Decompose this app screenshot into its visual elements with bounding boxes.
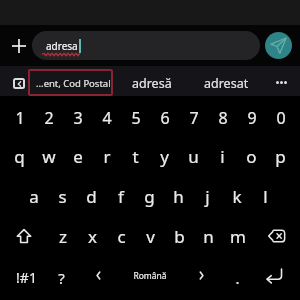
button[interactable]: p	[266, 138, 295, 178]
staticText: ?	[58, 268, 65, 288]
staticText: d	[86, 185, 97, 208]
button[interactable]: Send	[265, 32, 292, 59]
button[interactable]: 7	[179, 98, 208, 138]
button[interactable]: Enter	[255, 258, 300, 298]
staticText: u	[188, 145, 199, 168]
button[interactable]: More options	[261, 66, 300, 96]
staticText: 9	[247, 107, 257, 129]
button[interactable]: g	[135, 178, 164, 218]
staticText: m	[230, 225, 246, 248]
button[interactable]: a	[20, 178, 48, 218]
staticText: v	[146, 225, 155, 248]
staticText: adresat	[204, 75, 249, 92]
staticText: x	[88, 225, 97, 248]
staticText: f	[118, 185, 124, 208]
button[interactable]: Backspace	[252, 218, 300, 258]
staticText: p	[275, 145, 286, 168]
button[interactable]: Add attachment	[0, 25, 38, 66]
button[interactable]: d	[77, 178, 106, 218]
button[interactable]: adresă	[117, 66, 187, 96]
button[interactable]: 4	[92, 98, 121, 138]
staticText: Română	[133, 270, 167, 282]
button[interactable]: x	[78, 218, 107, 258]
button[interactable]: y	[150, 138, 179, 178]
button[interactable]: z	[48, 218, 78, 258]
staticText: 1	[15, 107, 25, 129]
button[interactable]: w	[34, 138, 63, 178]
staticText: q	[14, 145, 25, 168]
button[interactable]: !#1	[0, 258, 43, 298]
staticText: .	[235, 268, 240, 288]
staticText: 7	[189, 107, 199, 129]
staticText: 0	[276, 107, 286, 129]
button[interactable]: k	[222, 178, 251, 218]
staticText: w	[42, 145, 56, 168]
button[interactable]: 0	[266, 98, 295, 138]
staticText: k	[232, 185, 242, 208]
staticText: b	[174, 225, 185, 248]
button[interactable]: Română	[115, 258, 183, 298]
button[interactable]: adresat	[191, 66, 261, 96]
staticText: o	[246, 145, 257, 168]
button[interactable]: Shift	[0, 218, 48, 258]
staticText: a	[29, 185, 39, 208]
button[interactable]: ?	[43, 258, 79, 298]
staticText: h	[173, 185, 184, 208]
button[interactable]: Previous	[79, 258, 115, 298]
staticText: s	[58, 185, 67, 208]
button[interactable]: u	[179, 138, 208, 178]
button[interactable]: c	[107, 218, 136, 258]
staticText: i	[220, 145, 225, 168]
button[interactable]: ...ent, Cod Postal	[28, 69, 113, 96]
button[interactable]: f	[106, 178, 135, 218]
button[interactable]: t	[121, 138, 150, 178]
button[interactable]: Expand suggestions	[0, 66, 29, 96]
button[interactable]: 3	[63, 98, 92, 138]
button[interactable]: s	[48, 178, 77, 218]
staticText: 4	[102, 107, 112, 129]
staticText: 5	[131, 107, 141, 129]
button[interactable]: h	[164, 178, 193, 218]
button[interactable]: i	[208, 138, 237, 178]
staticText: adresă	[132, 75, 172, 92]
button[interactable]: 8	[208, 98, 237, 138]
staticText: !#1	[16, 268, 37, 287]
button[interactable]: n	[194, 218, 223, 258]
staticText: e	[73, 145, 83, 168]
staticText: adresa	[46, 39, 78, 53]
staticText: r	[103, 145, 111, 168]
button[interactable]: q	[5, 138, 34, 178]
button[interactable]: adresa	[32, 31, 260, 60]
button[interactable]: m	[223, 218, 252, 258]
staticText: y	[160, 145, 169, 168]
staticText: 6	[160, 107, 170, 129]
button[interactable]: 5	[121, 98, 150, 138]
button[interactable]: e	[63, 138, 92, 178]
staticText: c	[117, 225, 126, 248]
button[interactable]: b	[165, 218, 194, 258]
button[interactable]: o	[237, 138, 266, 178]
staticText: n	[203, 225, 214, 248]
button[interactable]: r	[92, 138, 121, 178]
button[interactable]: 2	[34, 98, 63, 138]
button[interactable]: 9	[237, 98, 266, 138]
staticText: g	[144, 185, 155, 208]
staticText: j	[205, 185, 210, 208]
button[interactable]: 1	[5, 98, 34, 138]
button[interactable]: l	[251, 178, 280, 218]
button[interactable]: 6	[150, 98, 179, 138]
button[interactable]: j	[193, 178, 222, 218]
staticText: 8	[218, 107, 228, 129]
button[interactable]: Next	[183, 258, 219, 298]
button[interactable]: .	[219, 258, 255, 298]
staticText: l	[263, 185, 268, 208]
staticText: t	[132, 145, 139, 168]
staticText: ...ent, Cod Postal	[36, 77, 111, 90]
staticText: 3	[73, 107, 83, 129]
staticText: 2	[44, 107, 54, 129]
button[interactable]: v	[136, 218, 165, 258]
staticText: z	[59, 225, 67, 248]
